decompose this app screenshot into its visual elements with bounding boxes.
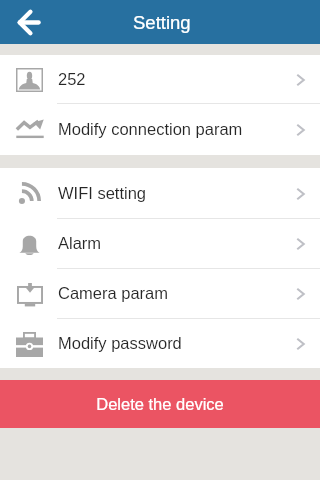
button[interactable]: 252: [0, 55, 320, 104]
staticText: Modify connection param: [58, 120, 243, 138]
staticText: 252: [58, 70, 86, 88]
staticText: Delete the device: [96, 395, 224, 413]
staticText: Camera param: [58, 284, 169, 302]
button[interactable]: Delete the device: [0, 380, 320, 428]
button[interactable]: Modify connection param: [0, 104, 320, 155]
staticText: WIFI setting: [58, 184, 147, 202]
button[interactable]: Modify password: [0, 319, 320, 369]
button[interactable]: Camera param: [0, 269, 320, 319]
button[interactable]: WIFI setting: [0, 168, 320, 219]
staticText: Alarm: [58, 234, 102, 252]
staticText: Modify password: [58, 334, 182, 352]
button[interactable]: Back: [0, 0, 56, 44]
button[interactable]: Alarm: [0, 219, 320, 269]
staticText: Setting: [133, 12, 191, 33]
